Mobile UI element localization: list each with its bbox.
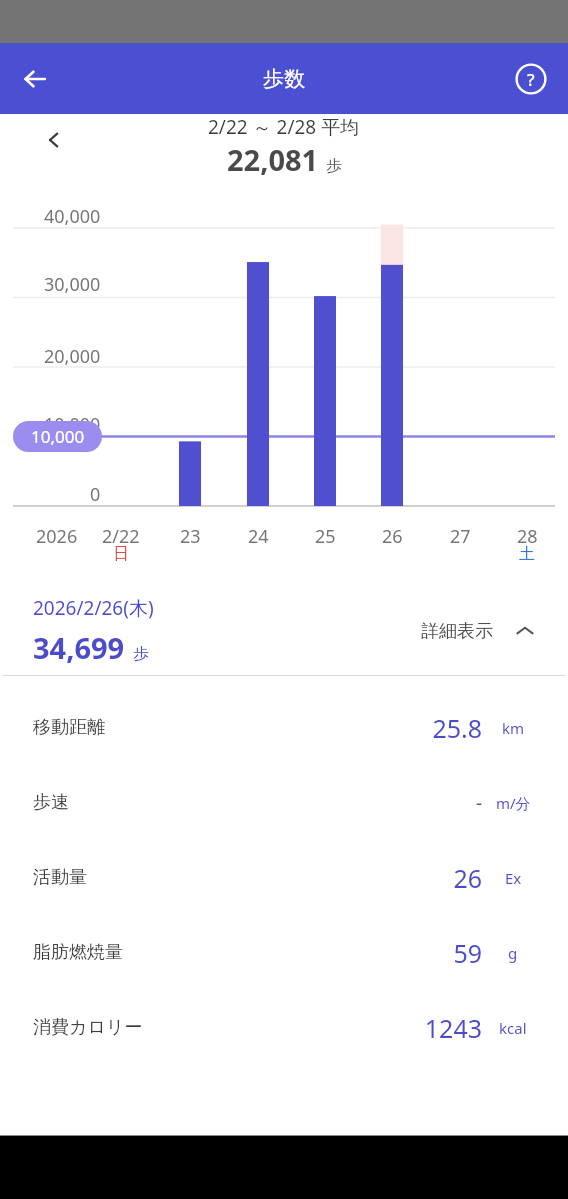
button[interactable]: 10,000: [13, 421, 102, 452]
staticText: 20,000: [44, 344, 101, 369]
staticText: 脂肪燃焼量: [33, 941, 123, 964]
staticText: 移動距離: [33, 716, 105, 739]
button[interactable]: 消費カロリー: [0, 990, 568, 1065]
staticText: 2/22: [102, 524, 140, 549]
staticText: 23: [180, 524, 201, 549]
staticText: 30,000: [44, 272, 101, 297]
staticText: 28: [517, 524, 538, 549]
staticText: km: [502, 718, 525, 738]
button[interactable]: 移動距離: [0, 690, 568, 765]
staticText: 25.8: [432, 711, 482, 745]
staticText: 10,000: [44, 412, 101, 437]
staticText: 40,000: [44, 204, 101, 229]
staticText: ?: [527, 68, 535, 91]
staticText: 歩: [326, 156, 342, 176]
button[interactable]: 活動量: [0, 840, 568, 915]
staticText: 土: [519, 544, 535, 564]
staticText: Ex: [505, 868, 522, 888]
staticText: -: [475, 790, 482, 816]
staticText: 2026/2/26(木): [33, 595, 154, 621]
staticText: 2026: [36, 524, 78, 549]
staticText: 25: [315, 524, 336, 549]
button[interactable]: 歩速: [0, 765, 568, 840]
staticText: 歩数: [263, 66, 305, 92]
button[interactable]: 脂肪燃焼量: [0, 915, 568, 990]
staticText: m/分: [496, 793, 531, 813]
staticText: kcal: [499, 1018, 527, 1038]
staticText: 0: [90, 482, 101, 507]
staticText: 27: [450, 524, 471, 549]
staticText: 59: [453, 936, 482, 970]
button[interactable]: 2026/2/26(木): [0, 587, 568, 675]
staticText: 活動量: [33, 866, 87, 889]
other: Collapse: [515, 621, 535, 641]
staticText: 24: [248, 524, 269, 549]
button[interactable]: Help: [504, 52, 558, 106]
staticText: 26: [382, 524, 403, 549]
staticText: 消費カロリー: [33, 1016, 143, 1039]
staticText: g: [508, 943, 518, 963]
staticText: 2/22 ～ 2/28 平均: [208, 114, 360, 140]
staticText: 10,000: [31, 425, 85, 448]
staticText: 22,081: [227, 140, 319, 179]
staticText: 26: [453, 861, 482, 895]
staticText: 1243: [424, 1011, 482, 1045]
button[interactable]: Back: [8, 52, 62, 106]
staticText: 34,699: [33, 628, 125, 667]
staticText: 歩: [133, 644, 149, 664]
staticText: 詳細表示: [421, 620, 493, 643]
staticText: 日: [113, 544, 129, 564]
staticText: 歩速: [33, 791, 69, 814]
button[interactable]: Previous week: [30, 116, 78, 164]
